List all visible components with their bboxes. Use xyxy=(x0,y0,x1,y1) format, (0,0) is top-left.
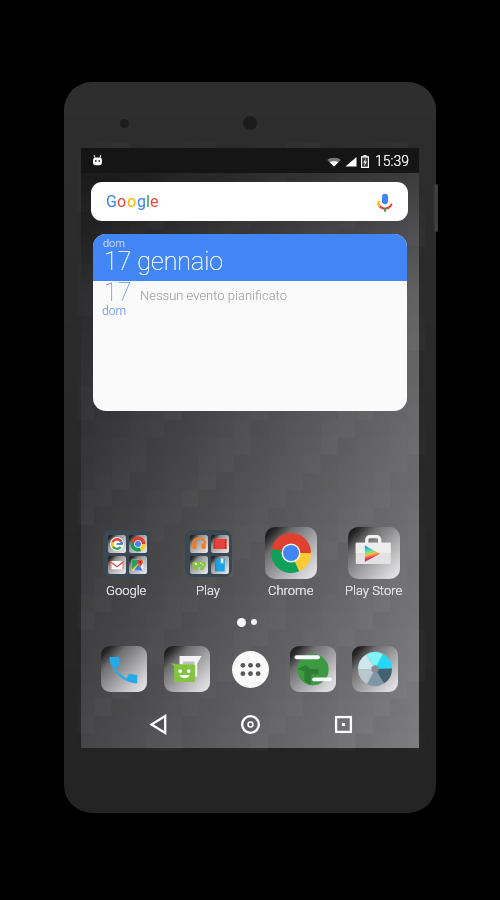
button[interactable]: Messaging xyxy=(161,643,213,695)
staticText: o xyxy=(117,192,127,211)
button[interactable]: Browser xyxy=(287,643,339,695)
staticText: 17 gennaio xyxy=(104,247,224,276)
staticText: Chrome xyxy=(268,583,314,598)
button[interactable]: Home xyxy=(226,700,274,748)
button[interactable]: Voice search xyxy=(374,191,396,213)
staticText: Google xyxy=(106,583,147,598)
staticText: Nessun evento pianificato xyxy=(140,288,287,303)
button[interactable]: dom xyxy=(93,234,407,411)
staticText: 15:39 xyxy=(375,153,410,169)
button[interactable]: Apps xyxy=(224,643,276,695)
button[interactable]: Play xyxy=(168,527,248,599)
staticText: 17 xyxy=(104,278,132,307)
button[interactable]: G xyxy=(91,182,408,221)
staticText: e xyxy=(150,192,159,211)
staticText: G xyxy=(106,192,117,211)
staticText: l xyxy=(146,192,150,211)
button[interactable]: Back xyxy=(135,700,183,748)
button[interactable]: Phone xyxy=(98,643,150,695)
staticText: g xyxy=(137,192,146,211)
button[interactable]: Google xyxy=(86,527,166,599)
staticText: dom xyxy=(103,237,126,250)
button[interactable]: Chrome xyxy=(251,527,331,599)
staticText: Play Store xyxy=(345,583,403,598)
button[interactable]: Play Store xyxy=(334,527,414,599)
button[interactable]: Camera xyxy=(349,643,401,695)
button[interactable]: Recents xyxy=(319,700,367,748)
staticText: dom xyxy=(102,304,127,318)
staticText: Play xyxy=(196,583,220,598)
staticText: o xyxy=(127,192,137,211)
